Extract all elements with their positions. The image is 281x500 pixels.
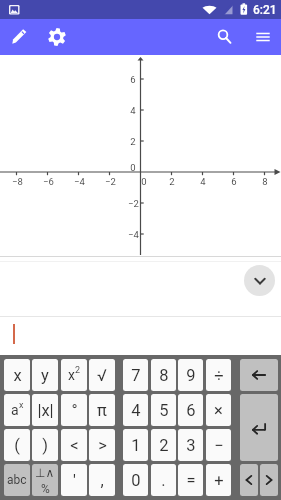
- button[interactable]: ): [32, 429, 58, 461]
- staticText: 6: [186, 401, 196, 420]
- staticText: 6: [231, 176, 237, 187]
- staticText: 2: [130, 136, 136, 147]
- button[interactable]: Left: [240, 464, 258, 496]
- staticText: (: [14, 436, 20, 455]
- staticText: 7: [131, 366, 141, 385]
- staticText: °: [71, 401, 78, 420]
- staticText: ): [42, 436, 48, 455]
- staticText: +: [214, 471, 224, 490]
- staticText: 4: [130, 105, 136, 116]
- staticText: −2: [128, 198, 139, 209]
- staticText: 2: [169, 176, 175, 187]
- staticText: 1: [131, 436, 141, 455]
- button[interactable]: ': [61, 464, 87, 496]
- button[interactable]: 3: [178, 429, 203, 461]
- button[interactable]: |x|: [32, 394, 58, 426]
- staticText: y: [41, 366, 49, 385]
- staticText: 4: [131, 401, 141, 420]
- button[interactable]: ×: [206, 394, 231, 426]
- button[interactable]: y: [32, 359, 58, 391]
- button[interactable]: .: [151, 464, 176, 496]
- staticText: x: [68, 367, 75, 383]
- staticText: −4: [128, 229, 139, 240]
- button[interactable]: √: [89, 359, 115, 391]
- button[interactable]: ⊥∧: [32, 464, 58, 496]
- staticText: =: [186, 471, 196, 490]
- staticText: −4: [74, 176, 85, 187]
- button[interactable]: π: [89, 394, 115, 426]
- button[interactable]: 6: [178, 394, 203, 426]
- staticText: 4: [200, 176, 206, 187]
- button[interactable]: 5: [151, 394, 176, 426]
- button[interactable]: x: [4, 359, 30, 391]
- staticText: <: [70, 436, 79, 455]
- button[interactable]: ,: [89, 464, 115, 496]
- button[interactable]: 7: [123, 359, 148, 391]
- button[interactable]: 0: [123, 464, 148, 496]
- staticText: ': [73, 471, 76, 490]
- staticText: −: [214, 436, 224, 455]
- staticText: >: [98, 436, 107, 455]
- staticText: 0: [130, 162, 136, 173]
- staticText: x: [13, 366, 22, 385]
- button[interactable]: −: [206, 429, 231, 461]
- button[interactable]: Edit: [7, 24, 32, 49]
- button[interactable]: 2: [151, 429, 176, 461]
- button[interactable]: Settings: [44, 24, 69, 49]
- staticText: 6: [130, 74, 136, 85]
- button[interactable]: °: [61, 394, 87, 426]
- staticText: ,: [100, 471, 104, 490]
- staticText: abc: [7, 473, 27, 487]
- staticText: %: [41, 482, 50, 496]
- staticText: ×: [214, 401, 223, 420]
- button[interactable]: Menu: [250, 24, 275, 49]
- staticText: 8: [159, 366, 169, 385]
- button[interactable]: <: [61, 429, 87, 461]
- button[interactable]: abc: [4, 464, 30, 496]
- button[interactable]: x: [61, 359, 87, 391]
- staticText: ⊥∧: [35, 466, 55, 480]
- staticText: π: [97, 401, 107, 420]
- button[interactable]: 4: [123, 394, 148, 426]
- button[interactable]: (: [4, 429, 30, 461]
- button[interactable]: Search: [212, 24, 237, 49]
- staticText: 6:21: [253, 3, 277, 17]
- staticText: 3: [186, 436, 196, 455]
- button[interactable]: +: [206, 464, 231, 496]
- staticText: 9: [186, 366, 196, 385]
- button[interactable]: 8: [151, 359, 176, 391]
- staticText: 5: [159, 401, 169, 420]
- button[interactable]: 1: [123, 429, 148, 461]
- button[interactable]: Collapse graph: [244, 265, 275, 296]
- button[interactable]: ÷: [206, 359, 231, 391]
- staticText: |x|: [37, 401, 54, 420]
- staticText: √: [97, 366, 107, 385]
- staticText: 2: [75, 365, 81, 376]
- button[interactable]: 9: [178, 359, 203, 391]
- staticText: −6: [43, 176, 54, 187]
- staticText: a: [11, 402, 19, 418]
- button[interactable]: Right: [260, 464, 278, 496]
- button[interactable]: a: [4, 394, 30, 426]
- staticText: .: [161, 471, 166, 490]
- button[interactable]: Backspace: [240, 359, 278, 391]
- staticText: x: [19, 400, 24, 411]
- staticText: 8: [262, 176, 268, 187]
- button[interactable]: Enter: [240, 394, 278, 461]
- staticText: 0: [141, 176, 147, 187]
- button[interactable]: =: [178, 464, 203, 496]
- button[interactable]: >: [89, 429, 115, 461]
- staticText: ÷: [214, 366, 224, 385]
- staticText: 2: [159, 436, 169, 455]
- staticText: 0: [131, 471, 141, 490]
- staticText: −2: [105, 176, 116, 187]
- staticText: −8: [12, 176, 23, 187]
